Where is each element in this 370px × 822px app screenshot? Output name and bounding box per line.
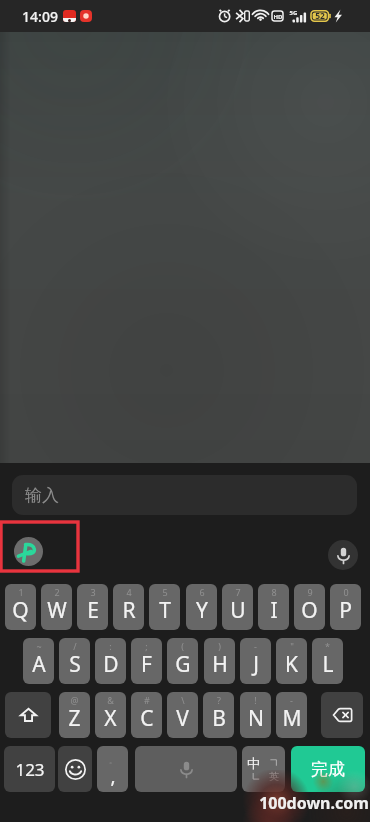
staticText: I	[270, 596, 278, 625]
staticText: M	[282, 704, 302, 733]
button[interactable]: ;	[131, 638, 162, 684]
button[interactable]: \	[167, 692, 198, 738]
button[interactable]: &	[95, 692, 126, 738]
staticText: HD	[273, 13, 283, 21]
button[interactable]: -	[276, 692, 307, 738]
staticText: H	[212, 650, 228, 679]
staticText: 英	[269, 770, 279, 783]
staticText: ?	[217, 694, 221, 706]
button[interactable]: 0	[330, 584, 361, 630]
button[interactable]: -	[240, 638, 271, 684]
staticText: "	[290, 640, 294, 652]
staticText: E	[87, 596, 99, 625]
staticText: \	[181, 694, 185, 706]
button[interactable]: Picacg input method	[14, 537, 43, 566]
staticText: D	[103, 650, 119, 679]
staticText: /	[73, 640, 77, 652]
staticText: ,	[110, 763, 116, 789]
staticText: W	[47, 596, 67, 625]
staticText: 52	[314, 10, 326, 22]
button[interactable]: Switch Chinese English	[242, 746, 285, 792]
button[interactable]: 7	[222, 584, 253, 630]
button[interactable]: *	[312, 638, 343, 684]
button[interactable]: 6	[186, 584, 217, 630]
button[interactable]: "	[276, 638, 307, 684]
staticText: R	[122, 596, 136, 625]
staticText: 6	[199, 586, 205, 598]
staticText: K	[285, 650, 298, 679]
staticText: T	[159, 596, 171, 625]
staticText: @	[70, 694, 79, 706]
staticText: 4	[126, 586, 132, 598]
button[interactable]: 1	[5, 584, 36, 630]
staticText: L	[322, 650, 334, 679]
button[interactable]: 5	[149, 584, 180, 630]
button[interactable]: #	[131, 692, 162, 738]
button[interactable]: ~	[23, 638, 54, 684]
staticText: 9	[307, 586, 313, 598]
staticText: V	[176, 704, 189, 733]
staticText: !	[254, 694, 257, 706]
staticText: (	[181, 640, 184, 652]
staticText: 0	[343, 586, 349, 598]
staticText: -	[290, 694, 293, 706]
staticText: 14:09	[22, 7, 58, 26]
button[interactable]: ?	[203, 692, 234, 738]
staticText: :	[109, 640, 112, 652]
staticText: Z	[68, 704, 81, 733]
staticText: S	[69, 650, 81, 679]
staticText: 输入	[25, 485, 59, 506]
staticText: 123	[15, 758, 45, 781]
staticText: A	[32, 650, 46, 679]
button[interactable]: Shift	[5, 692, 51, 738]
staticText: ;	[145, 640, 148, 652]
button[interactable]: 123	[4, 746, 55, 792]
button[interactable]: /	[59, 638, 90, 684]
button[interactable]: 8	[258, 584, 289, 630]
staticText: U	[230, 596, 246, 625]
staticText: N	[248, 704, 264, 733]
staticText: )	[218, 640, 221, 652]
staticText: 中	[247, 755, 260, 771]
button[interactable]: Emoji	[58, 746, 92, 792]
staticText: B	[212, 704, 226, 733]
staticText: 7	[235, 586, 241, 598]
button[interactable]: )	[204, 638, 235, 684]
staticText: F	[141, 650, 152, 679]
button[interactable]: 2	[41, 584, 72, 630]
button[interactable]: Voice input	[328, 540, 358, 570]
button[interactable]: !	[240, 692, 271, 738]
staticText: 2	[54, 586, 60, 598]
staticText: 5	[162, 586, 168, 598]
staticText: 1	[18, 586, 24, 598]
button[interactable]: Backspace	[321, 692, 363, 738]
staticText: J	[253, 650, 259, 679]
button[interactable]: Comma	[97, 746, 128, 792]
staticText: X	[104, 704, 117, 733]
staticText: &	[107, 694, 114, 706]
staticText: 5G	[289, 9, 298, 17]
staticText: O	[301, 596, 318, 625]
button[interactable]: :	[95, 638, 126, 684]
button[interactable]: 完成	[291, 746, 365, 792]
staticText: 100down.com	[259, 792, 369, 814]
staticText: P	[339, 596, 352, 625]
staticText: C	[140, 704, 154, 733]
button[interactable]: 4	[113, 584, 144, 630]
staticText: ~	[36, 640, 42, 652]
button[interactable]: 3	[77, 584, 108, 630]
staticText: -	[254, 640, 257, 652]
staticText: Y	[196, 596, 208, 625]
staticText: G	[175, 650, 191, 679]
staticText: *	[325, 640, 330, 652]
button[interactable]: (	[167, 638, 198, 684]
staticText: 8	[271, 586, 277, 598]
button[interactable]: @	[59, 692, 90, 738]
button[interactable]: 9	[294, 584, 325, 630]
staticText: 完成	[311, 759, 345, 780]
button[interactable]: Space	[135, 746, 237, 792]
staticText: Q	[12, 596, 29, 625]
staticText: 3	[90, 586, 96, 598]
button[interactable]: 输入	[12, 475, 357, 515]
